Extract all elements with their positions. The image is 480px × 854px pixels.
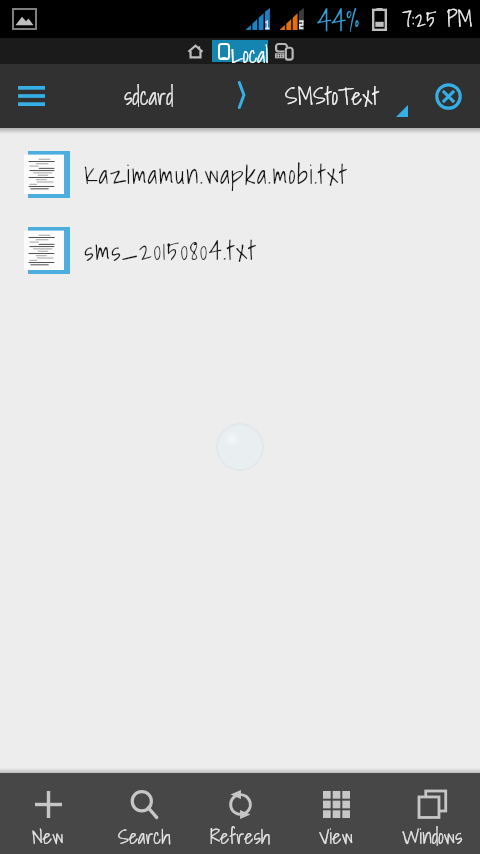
- staticText: New: [32, 821, 64, 853]
- button[interactable]: Menu: [0, 65, 62, 127]
- button[interactable]: Close: [426, 74, 470, 118]
- staticText: View: [319, 821, 353, 853]
- button[interactable]: sms_20150804.txt: [0, 212, 480, 288]
- button[interactable]: Devices: [272, 38, 296, 64]
- button[interactable]: View: [288, 773, 384, 854]
- button[interactable]: Windows: [384, 773, 480, 854]
- button[interactable]: [212, 40, 268, 62]
- button[interactable]: SMStoText: [285, 78, 379, 115]
- staticText: Kazimamun.wapka.mobi.txt: [84, 153, 348, 195]
- staticText: sms_20150804.txt: [84, 229, 257, 271]
- button[interactable]: Search: [96, 773, 192, 854]
- staticText: Refresh: [210, 821, 271, 853]
- staticText: 7:25 PM: [402, 1, 473, 36]
- button[interactable]: sdcard: [124, 78, 174, 115]
- button[interactable]: Kazimamun.wapka.mobi.txt: [0, 136, 480, 212]
- button[interactable]: New: [0, 773, 96, 854]
- staticText: Local: [231, 37, 269, 63]
- staticText: Windows: [402, 821, 463, 853]
- button[interactable]: Home: [183, 38, 208, 64]
- staticText: Search: [118, 821, 171, 853]
- button[interactable]: Refresh: [192, 773, 288, 854]
- staticText: 44%: [317, 0, 360, 36]
